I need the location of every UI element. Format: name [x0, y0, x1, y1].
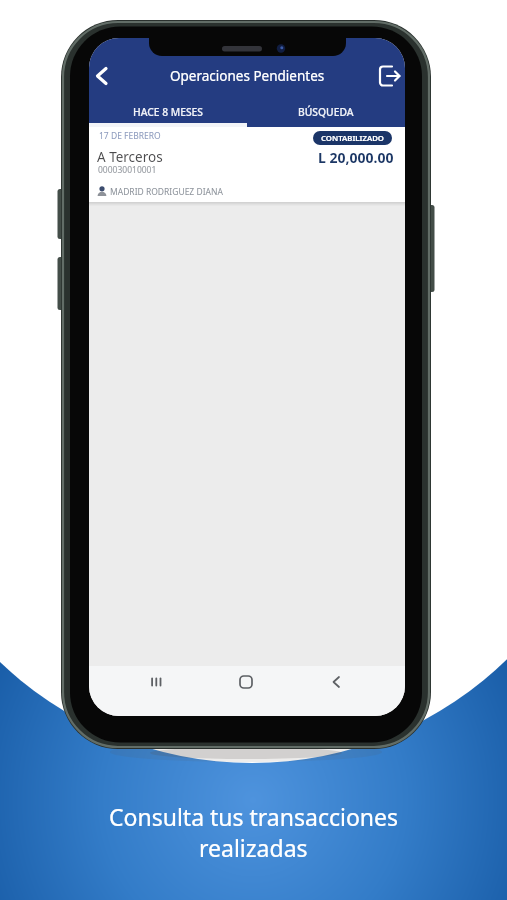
staticText: realizadas: [199, 832, 308, 863]
staticText: 000030010001: [98, 164, 157, 176]
button[interactable]: BÚSQUEDA: [247, 100, 405, 127]
staticText: HACE 8 MESES: [133, 105, 204, 119]
button[interactable]: HACE 8 MESES: [89, 100, 247, 127]
button[interactable]: [226, 666, 266, 698]
staticText: Consulta tus transacciones: [109, 801, 399, 832]
staticText: L 20,000.00: [318, 148, 394, 167]
button[interactable]: 17 DE FEBRERO: [89, 127, 405, 202]
button[interactable]: [316, 666, 356, 698]
staticText: CONTABILIZADO: [321, 133, 385, 144]
button[interactable]: [373, 62, 405, 92]
button[interactable]: [89, 62, 119, 92]
staticText: A Terceros: [97, 148, 163, 166]
staticText: MADRID RODRIGUEZ DIANA: [110, 186, 223, 198]
staticText: Operaciones Pendientes: [170, 67, 325, 85]
staticText: BÚSQUEDA: [298, 105, 354, 119]
staticText: 17 DE FEBRERO: [99, 130, 161, 142]
button[interactable]: [136, 666, 176, 698]
